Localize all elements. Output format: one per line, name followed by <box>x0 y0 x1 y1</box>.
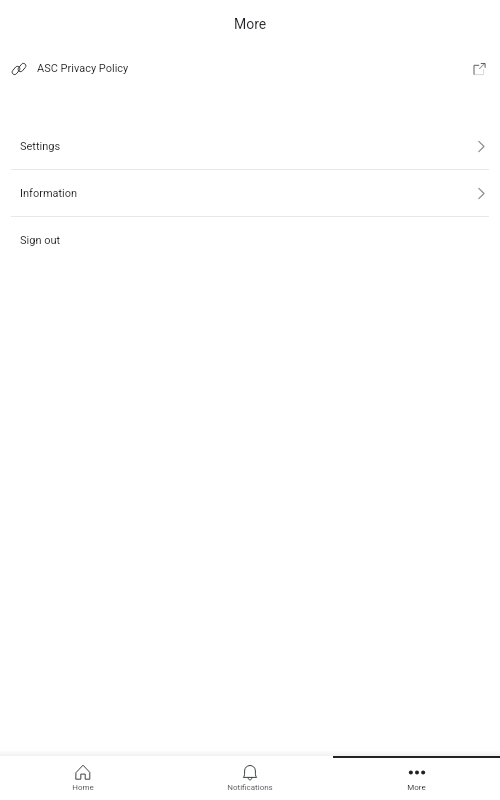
staticText: Home <box>72 783 94 792</box>
button[interactable]: Settings <box>0 123 500 169</box>
staticText: ASC Privacy Policy <box>37 62 129 75</box>
button[interactable]: Home <box>0 756 166 800</box>
staticText: Sign out <box>20 234 61 247</box>
button[interactable]: Notifications <box>166 756 333 800</box>
staticText: More <box>234 16 267 32</box>
button[interactable]: Sign out <box>0 217 500 263</box>
staticText: Notifications <box>227 783 273 792</box>
button[interactable]: Open privacy policy in browser <box>466 56 492 82</box>
button[interactable]: More <box>333 756 500 800</box>
staticText: More <box>407 783 426 792</box>
button[interactable]: ASC Privacy Policy <box>0 46 500 91</box>
staticText: Settings <box>20 140 61 153</box>
button[interactable]: Information <box>0 170 500 216</box>
staticText: Information <box>20 187 78 200</box>
